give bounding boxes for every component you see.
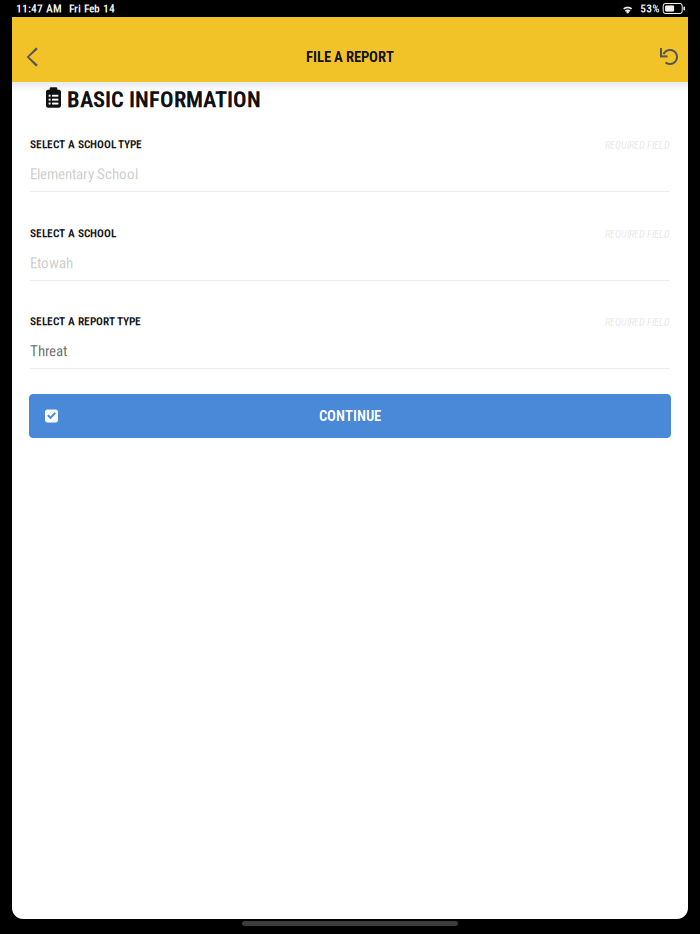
staticText: SELECT A SCHOOL xyxy=(30,227,116,240)
staticText: Fri Feb 14 xyxy=(69,2,115,15)
staticText: BASIC INFORMATION xyxy=(67,86,261,113)
staticText: Threat xyxy=(30,342,67,360)
button[interactable]: CONTINUE xyxy=(12,394,688,438)
button[interactable]: Back xyxy=(13,32,51,82)
staticText: REQUIRED FIELD xyxy=(605,228,670,240)
staticText: REQUIRED FIELD xyxy=(605,139,670,151)
button[interactable]: SELECT A SCHOOL xyxy=(12,227,688,281)
staticText: SELECT A SCHOOL TYPE xyxy=(30,138,142,151)
staticText: SELECT A REPORT TYPE xyxy=(30,315,141,328)
staticText: 53% xyxy=(640,2,659,15)
button[interactable]: SELECT A REPORT TYPE xyxy=(12,315,688,369)
button[interactable]: Start over xyxy=(649,32,687,82)
staticText: CONTINUE xyxy=(319,407,381,425)
staticText: REQUIRED FIELD xyxy=(605,316,670,328)
staticText: Elementary School xyxy=(30,165,138,183)
staticText: 11:47 AM xyxy=(16,2,62,15)
staticText: FILE A REPORT xyxy=(306,48,394,66)
staticText: Etowah xyxy=(30,254,73,272)
button[interactable]: SELECT A SCHOOL TYPE xyxy=(12,138,688,192)
